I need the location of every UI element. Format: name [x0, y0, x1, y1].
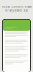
staticText: for any device size — [4, 9, 28, 12]
staticText: Reuse Content Views — [1, 5, 31, 8]
